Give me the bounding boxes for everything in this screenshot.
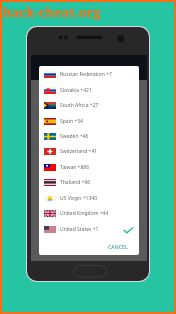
staticText: Sweden +46: [60, 133, 89, 140]
other: Selected: [123, 226, 134, 234]
button[interactable]: CANCEL: [98, 241, 139, 252]
button[interactable]: Switzerland +41: [39, 144, 139, 159]
button[interactable]: South Africa +27: [39, 98, 139, 113]
button[interactable]: Spain +34: [39, 114, 139, 129]
staticText: United States +1: [60, 226, 99, 233]
staticText: Russian Federation +7: [60, 71, 112, 78]
staticText: Taiwan +886: [60, 164, 90, 171]
staticText: Switzerland +41: [60, 148, 98, 155]
staticText: US Virgin +1340: [60, 195, 98, 202]
button[interactable]: Sweden +46: [39, 129, 139, 144]
staticText: CANCEL: [108, 243, 128, 250]
staticText: Spain +34: [60, 118, 83, 125]
button[interactable]: Thailand +66: [39, 175, 139, 190]
button[interactable]: Taiwan +886: [39, 160, 139, 175]
button[interactable]: Russian Federation +7: [39, 67, 139, 82]
staticText: South Africa +27: [60, 102, 99, 109]
staticText: hack-cheat.org: [3, 3, 101, 21]
staticText: Thailand +66: [60, 179, 91, 186]
button[interactable]: Slovakia +421: [39, 83, 139, 98]
staticText: Slovakia +421: [60, 87, 92, 94]
staticText: United Kingdom +44: [60, 210, 109, 217]
button[interactable]: US Virgin +1340: [39, 191, 139, 206]
button[interactable]: United States +1: [39, 222, 139, 237]
button[interactable]: United Kingdom +44: [39, 206, 139, 221]
